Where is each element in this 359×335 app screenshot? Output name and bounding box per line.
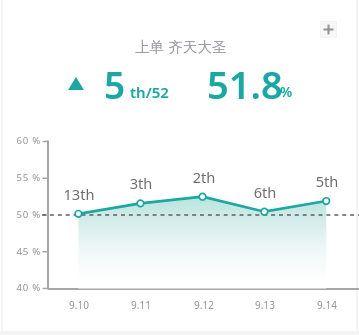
staticText: 6th [240, 182, 290, 335]
staticText: 9.14 [307, 298, 347, 335]
staticText: 51.8 [207, 58, 283, 110]
staticText: 45 % [10, 245, 41, 335]
staticText: 5th [302, 171, 352, 335]
staticText: th/52 [130, 82, 169, 102]
staticText: 13th [54, 184, 104, 335]
staticText: 9.11 [121, 298, 161, 335]
button[interactable]: Add [320, 21, 337, 38]
staticText: 9.13 [245, 298, 285, 335]
staticText: 9.12 [184, 298, 224, 335]
staticText: 60 % [10, 134, 41, 335]
staticText: 上单 齐天大圣 [135, 36, 227, 56]
staticText: 3th [116, 173, 166, 335]
staticText: 9.10 [59, 298, 99, 335]
staticText: 2th [179, 167, 229, 335]
staticText: 55 % [10, 171, 41, 335]
staticText: 5 [104, 59, 126, 109]
staticText: 50 % [10, 208, 41, 335]
staticText: % [280, 82, 293, 101]
staticText: 40 % [10, 281, 41, 335]
